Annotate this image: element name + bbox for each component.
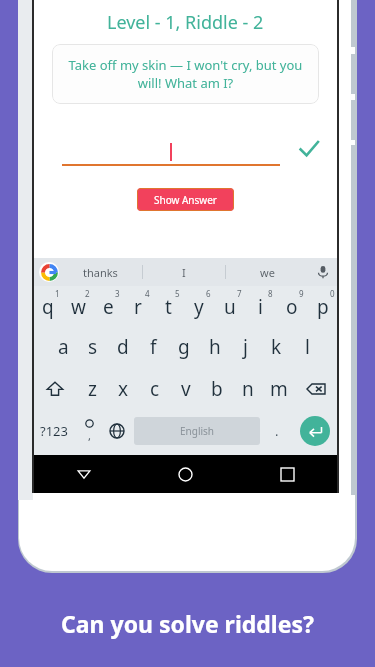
button[interactable]: Emoji [75, 410, 103, 452]
button[interactable] [62, 126, 280, 166]
button[interactable]: v [170, 368, 201, 410]
button[interactable]: b [201, 368, 232, 410]
button[interactable]: t [153, 286, 183, 326]
button[interactable]: g [168, 326, 199, 368]
button[interactable]: o [276, 286, 307, 326]
button[interactable]: x [108, 368, 139, 410]
button[interactable]: h [199, 326, 230, 368]
staticText: l [305, 334, 310, 360]
staticText: we [260, 265, 275, 280]
staticText: s [88, 334, 98, 360]
staticText: w [71, 294, 86, 320]
button[interactable]: q [33, 286, 63, 326]
staticText: ?123 [40, 422, 68, 440]
staticText: g [178, 334, 190, 360]
staticText: u [224, 294, 236, 320]
staticText: 9 [299, 288, 304, 299]
button[interactable]: . [263, 410, 291, 452]
staticText: a [58, 334, 69, 360]
staticText: m [270, 376, 288, 402]
button[interactable]: English [134, 417, 260, 445]
staticText: d [117, 334, 129, 360]
staticText: . [275, 422, 279, 440]
button[interactable]: z [77, 368, 108, 410]
button[interactable]: r [123, 286, 153, 326]
button[interactable]: I [143, 258, 225, 286]
staticText: r [134, 294, 142, 320]
staticText: Show Answer [154, 193, 217, 207]
button[interactable]: m [263, 368, 294, 410]
button[interactable]: i [245, 286, 276, 326]
staticText: o [286, 294, 298, 320]
button[interactable]: Voice input [308, 258, 338, 286]
button[interactable]: u [214, 286, 245, 326]
button[interactable]: Shift [33, 368, 77, 410]
staticText: t [165, 294, 172, 320]
staticText: f [150, 334, 157, 360]
staticText: 8 [268, 288, 273, 299]
staticText: Level - 1, Riddle - 2 [107, 10, 264, 35]
button[interactable]: Take off my skin — I won't cry, but you … [52, 44, 319, 104]
button[interactable]: k [261, 326, 292, 368]
staticText: k [271, 334, 282, 360]
staticText: 2 [85, 288, 90, 299]
button[interactable]: thanks [59, 258, 142, 286]
staticText: 4 [145, 288, 150, 299]
button[interactable]: Change language [103, 410, 131, 452]
button[interactable]: w [63, 286, 93, 326]
button[interactable]: Home [134, 455, 236, 493]
staticText: , [88, 428, 91, 443]
staticText: j [243, 334, 248, 360]
staticText: n [242, 376, 254, 402]
button[interactable]: a [48, 326, 78, 368]
button[interactable]: y [183, 286, 214, 326]
button[interactable]: e [93, 286, 123, 326]
staticText: y [194, 294, 204, 320]
button[interactable]: ?123 [33, 410, 75, 452]
button[interactable]: c [139, 368, 170, 410]
staticText: b [211, 376, 223, 402]
button[interactable]: Google [39, 262, 59, 282]
staticText: v [181, 376, 191, 402]
staticText: c [150, 376, 160, 402]
staticText: p [317, 294, 329, 320]
button[interactable]: Backspace [294, 368, 338, 410]
button[interactable]: Back [33, 455, 134, 493]
staticText: x [118, 376, 129, 402]
staticText: z [88, 376, 97, 402]
staticText: 1 [55, 288, 60, 299]
button[interactable]: d [108, 326, 138, 368]
staticText: q [42, 294, 54, 320]
button[interactable]: Recents [236, 455, 338, 493]
staticText: 6 [206, 288, 211, 299]
button[interactable]: Show Answer [137, 188, 234, 211]
staticText: 7 [237, 288, 242, 299]
staticText: thanks [83, 265, 118, 280]
staticText: 3 [115, 288, 120, 299]
button[interactable]: Enter [300, 416, 330, 446]
staticText: Can you solve riddles? [61, 608, 314, 639]
button[interactable]: f [138, 326, 168, 368]
button[interactable]: we [226, 258, 308, 286]
button[interactable]: Submit answer [292, 132, 326, 166]
staticText: 5 [175, 288, 180, 299]
button[interactable]: p [307, 286, 338, 326]
button[interactable]: l [292, 326, 323, 368]
staticText: English [180, 424, 215, 438]
button[interactable]: j [230, 326, 261, 368]
staticText: 0 [330, 288, 335, 299]
staticText: I [182, 265, 186, 280]
staticText: i [258, 294, 263, 320]
staticText: e [103, 294, 114, 320]
staticText: Take off my skin — I won't cry, but you … [62, 56, 309, 92]
button[interactable]: n [232, 368, 263, 410]
staticText: h [209, 334, 221, 360]
button[interactable]: s [78, 326, 108, 368]
